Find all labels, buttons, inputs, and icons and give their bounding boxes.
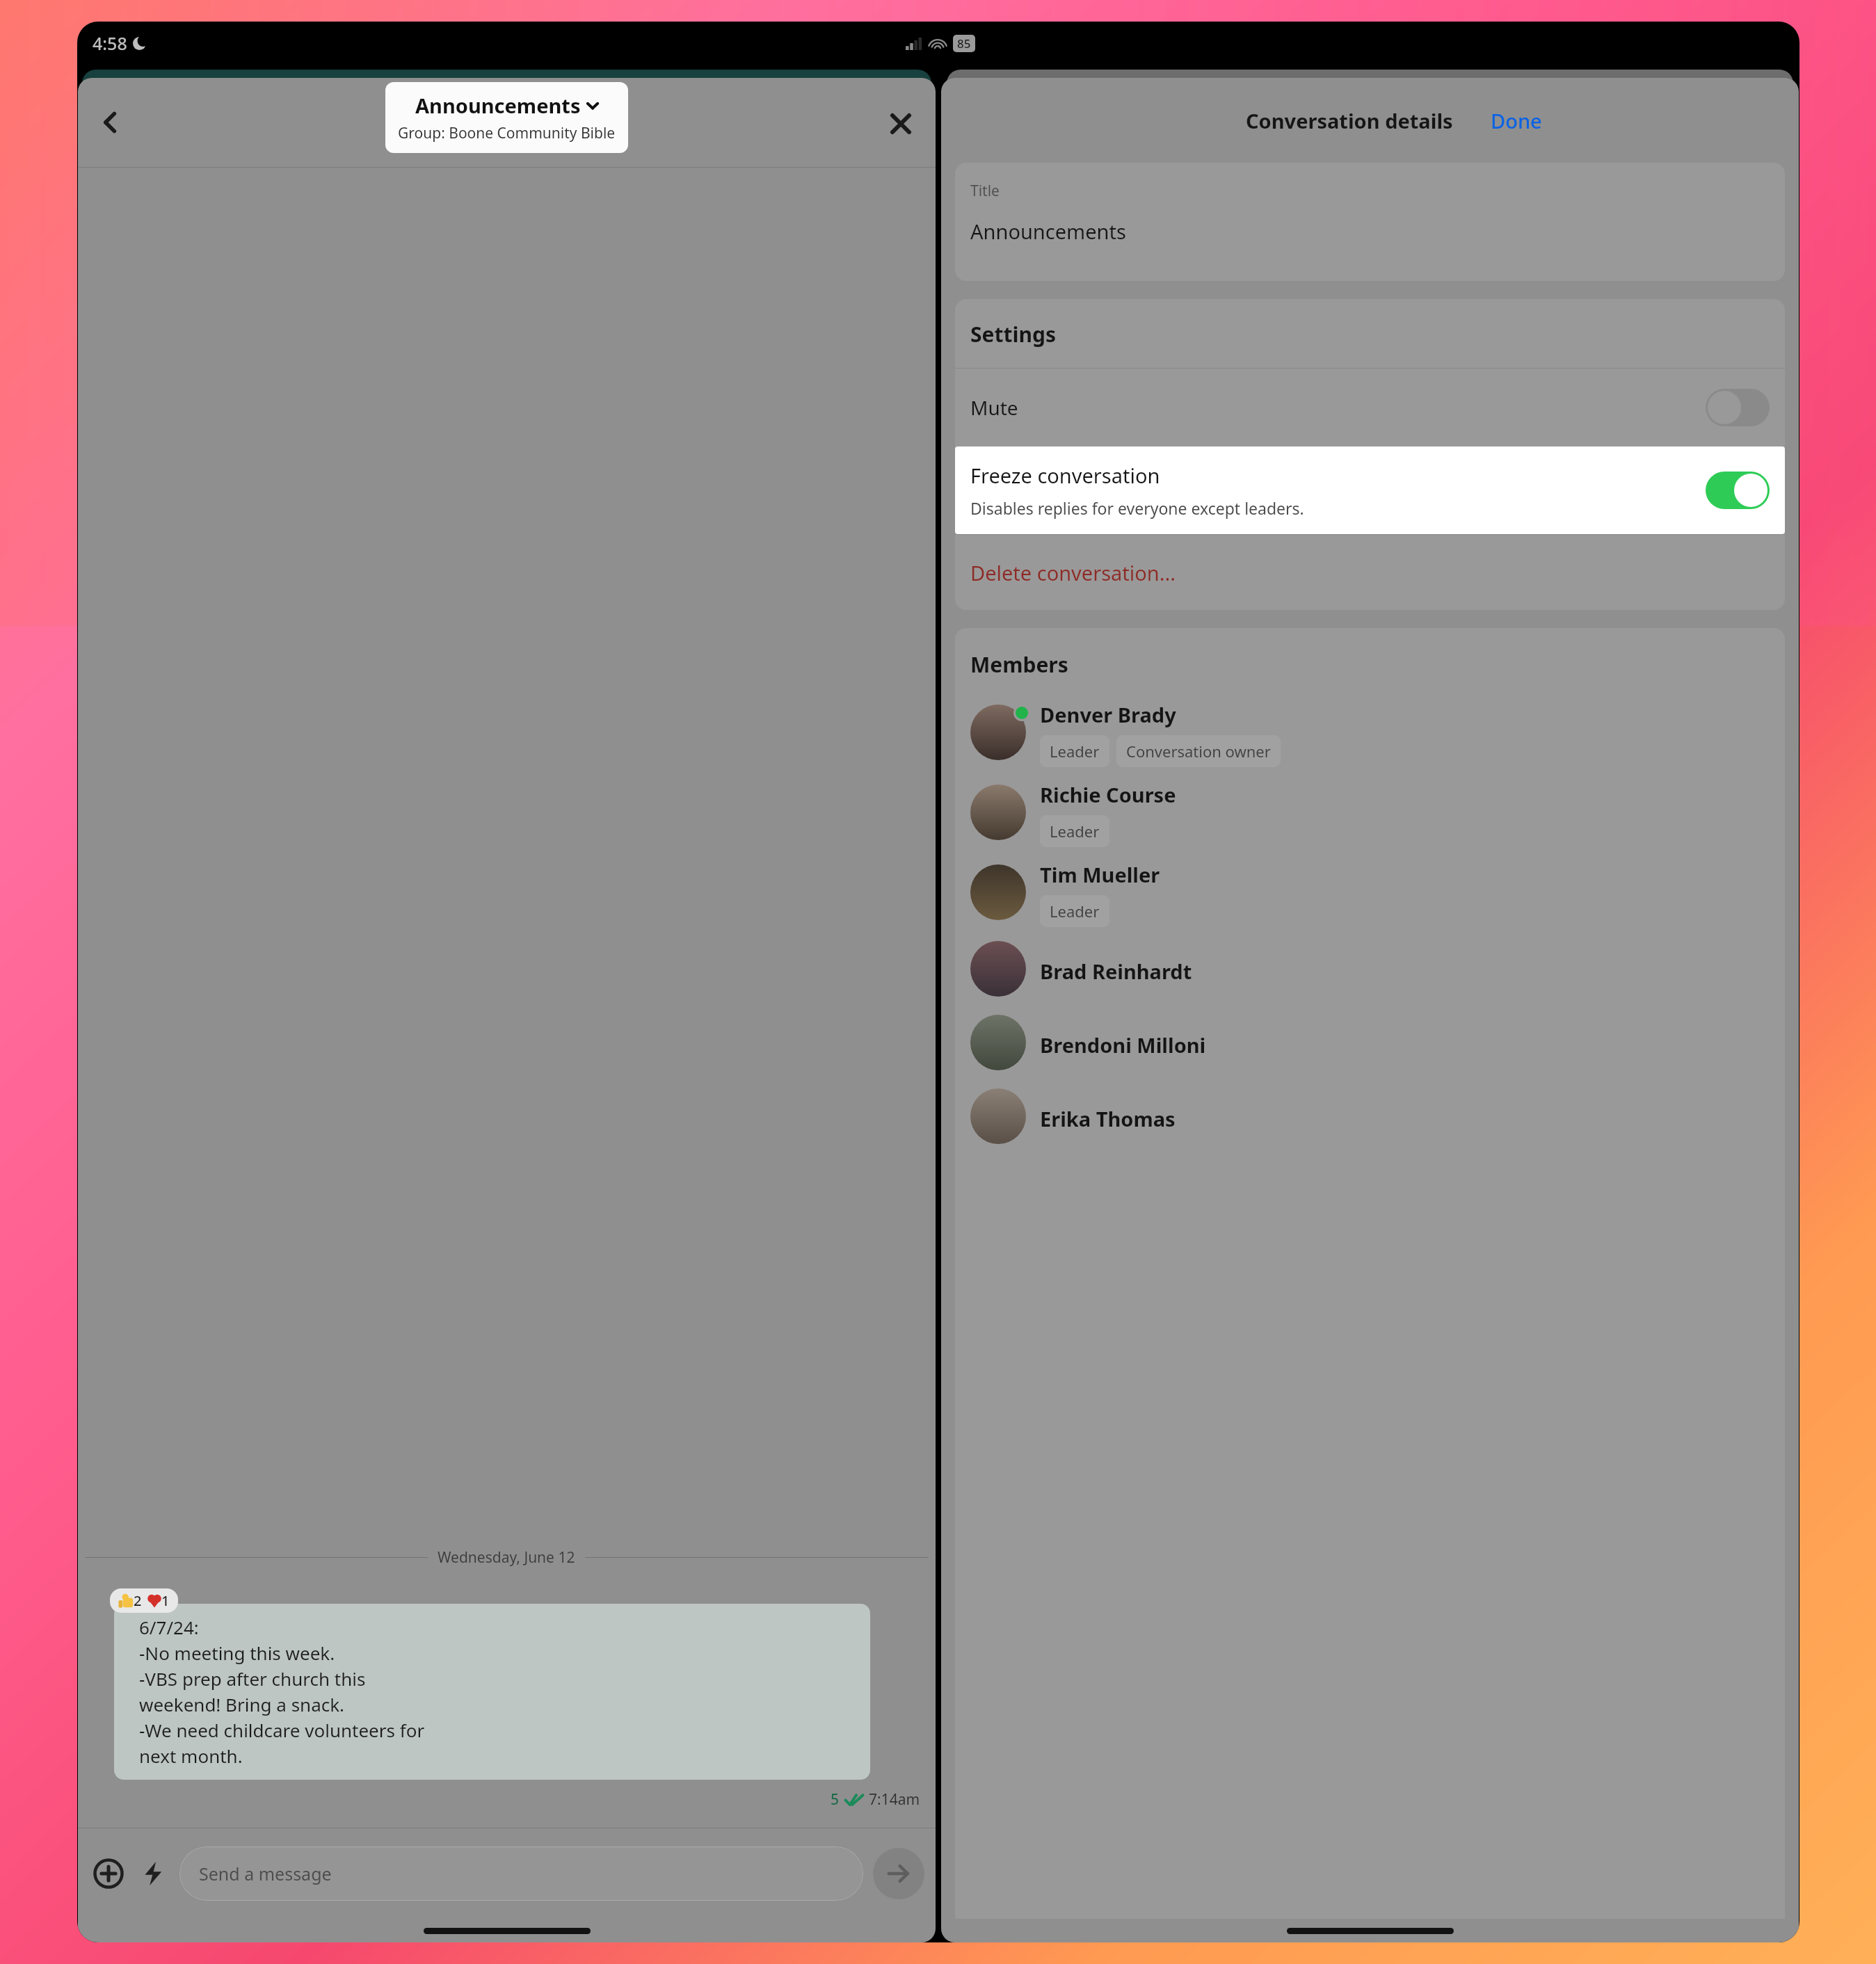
staticText: 5 [831, 1789, 840, 1810]
button[interactable]: Send a message [179, 1846, 863, 1901]
staticText: 4:58 [93, 31, 127, 55]
staticText: Wednesday, June 12 [438, 1547, 575, 1568]
staticText: Announcements [970, 218, 1126, 245]
staticText: Leader [1050, 821, 1100, 842]
button[interactable]: Delete conversation... [955, 535, 1785, 610]
button[interactable]: Erika Thomas [955, 1081, 1785, 1155]
button[interactable]: Title [955, 163, 1785, 281]
staticText: Settings [970, 320, 1056, 348]
button[interactable]: Quick actions [135, 1856, 171, 1892]
staticText: Tim Mueller [1040, 861, 1160, 888]
button[interactable]: Toggle off [1706, 389, 1770, 426]
staticText: Leader [1050, 901, 1100, 921]
button[interactable]: 6/7/24: -No meeting this week. -VBS prep… [139, 1615, 860, 1769]
staticText: Conversation details [1246, 107, 1453, 134]
staticText: Erika Thomas [1040, 1105, 1176, 1132]
button[interactable]: 2 [110, 1588, 178, 1613]
staticText: Send a message [199, 1862, 332, 1885]
staticText: Brad Reinhardt [1040, 958, 1192, 985]
staticText: 6/7/24: -No meeting this week. -VBS prep… [139, 1615, 425, 1769]
staticText: 1 [161, 1591, 170, 1610]
staticText: Mute [970, 394, 1018, 421]
button[interactable]: Add attachment [89, 1854, 128, 1893]
staticText: Title [970, 181, 1000, 201]
staticText: Denver Brady [1040, 701, 1176, 728]
button[interactable]: Denver Brady [955, 694, 1785, 774]
button[interactable]: Send [873, 1848, 924, 1899]
button[interactable]: Done [1486, 103, 1546, 138]
staticText: Done [1491, 107, 1542, 134]
staticText: Conversation owner [1126, 741, 1271, 762]
staticText: Leader [1050, 741, 1100, 762]
button[interactable]: Announcements [385, 82, 628, 153]
staticText: Announcements [415, 92, 581, 119]
button[interactable]: Toggle on [1706, 472, 1770, 509]
staticText: Disables replies for everyone except lea… [970, 497, 1304, 519]
button[interactable]: Mute [955, 369, 1785, 446]
button[interactable]: Brendoni Milloni [955, 1008, 1785, 1081]
button[interactable]: Tim Mueller [955, 854, 1785, 934]
staticText: Members [970, 650, 1068, 679]
staticText: Group: Boone Community Bible [398, 123, 616, 143]
button[interactable]: Close [881, 104, 920, 143]
button[interactable]: Brad Reinhardt [955, 934, 1785, 1008]
staticText: Freeze conversation [970, 462, 1160, 489]
button[interactable]: Freeze conversation [955, 446, 1785, 534]
staticText: 7:14am [869, 1789, 920, 1810]
staticText: Delete conversation... [970, 559, 1176, 586]
button[interactable]: Back [90, 102, 131, 143]
button[interactable]: Richie Course [955, 774, 1785, 854]
staticText: Brendoni Milloni [1040, 1031, 1206, 1059]
staticText: Richie Course [1040, 781, 1176, 808]
staticText: 85 [957, 35, 971, 51]
staticText: 2 [134, 1591, 142, 1610]
